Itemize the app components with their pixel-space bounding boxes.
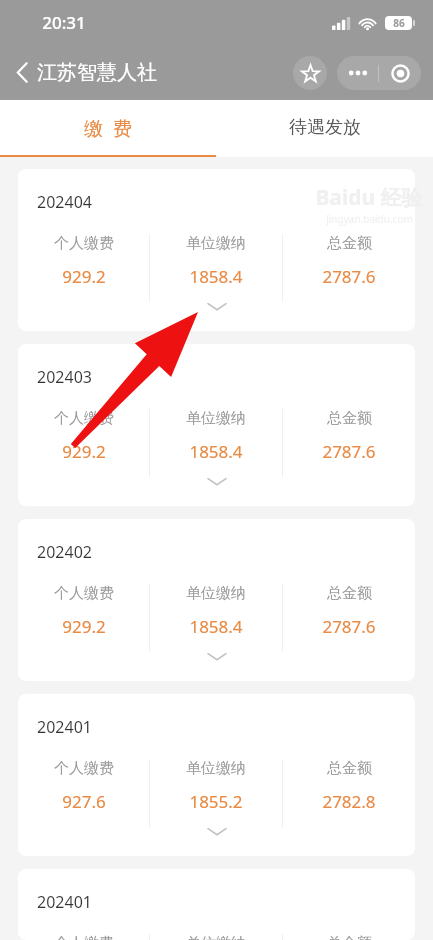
staticText: 待遇发放 — [289, 116, 361, 139]
staticText: 927.6 — [62, 790, 106, 813]
staticText: 929.2 — [62, 615, 106, 638]
staticText: 个人缴费 — [54, 584, 114, 603]
button[interactable]: 待遇发放 — [216, 100, 433, 155]
staticText: 929.2 — [62, 265, 106, 288]
button[interactable]: 缴 费 — [0, 100, 216, 155]
staticText: 202402 — [37, 541, 92, 563]
button[interactable]: Favorite — [293, 56, 327, 90]
other: Expand — [208, 827, 226, 836]
button[interactable]: 202402 — [18, 519, 415, 681]
staticText: jingyan.baidu.com — [326, 212, 413, 226]
button[interactable]: More options — [337, 56, 378, 90]
button[interactable]: 202401 — [18, 869, 415, 940]
staticText: 总金额 — [327, 584, 372, 603]
staticText: 2787.6 — [322, 440, 376, 463]
staticText: 929.2 — [62, 440, 106, 463]
other: Expand — [208, 477, 226, 486]
staticText: 202401 — [37, 891, 92, 913]
staticText: 202403 — [37, 366, 92, 388]
staticText: 2782.8 — [322, 790, 376, 813]
staticText: 1858.4 — [189, 265, 243, 288]
other: Expand — [208, 652, 226, 661]
staticText: 个人缴费 — [54, 409, 114, 428]
staticText: 1858.4 — [189, 440, 243, 463]
button[interactable]: Back — [12, 54, 161, 91]
staticText: 单位缴纳 — [186, 409, 246, 428]
staticText: 单位缴纳 — [186, 934, 246, 940]
staticText: 1855.2 — [189, 790, 243, 813]
staticText: 2787.6 — [322, 265, 376, 288]
staticText: 86 — [393, 16, 405, 30]
staticText: 202404 — [37, 191, 92, 213]
button[interactable]: 202403 — [18, 344, 415, 506]
staticText: 总金额 — [327, 234, 372, 253]
staticText: 1858.4 — [189, 615, 243, 638]
staticText: 个人缴费 — [54, 759, 114, 778]
staticText: 2787.6 — [322, 615, 376, 638]
staticText: Baidu 经验 — [315, 183, 423, 212]
staticText: 江苏智慧人社 — [37, 60, 157, 85]
button[interactable]: 202404 — [18, 169, 415, 331]
staticText: 总金额 — [327, 759, 372, 778]
staticText: 单位缴纳 — [186, 584, 246, 603]
staticText: 总金额 — [327, 934, 372, 940]
staticText: 单位缴纳 — [186, 234, 246, 253]
staticText: 202401 — [37, 716, 92, 738]
button[interactable]: 202401 — [18, 694, 415, 856]
staticText: 个人缴费 — [54, 234, 114, 253]
other: Expand — [208, 302, 226, 311]
staticText: 个人缴费 — [54, 934, 114, 940]
staticText: 20:31 — [42, 11, 86, 34]
staticText: 总金额 — [327, 409, 372, 428]
other: Back — [16, 62, 29, 83]
staticText: 单位缴纳 — [186, 759, 246, 778]
button[interactable]: Close — [379, 56, 421, 90]
staticText: 缴 费 — [84, 115, 132, 141]
